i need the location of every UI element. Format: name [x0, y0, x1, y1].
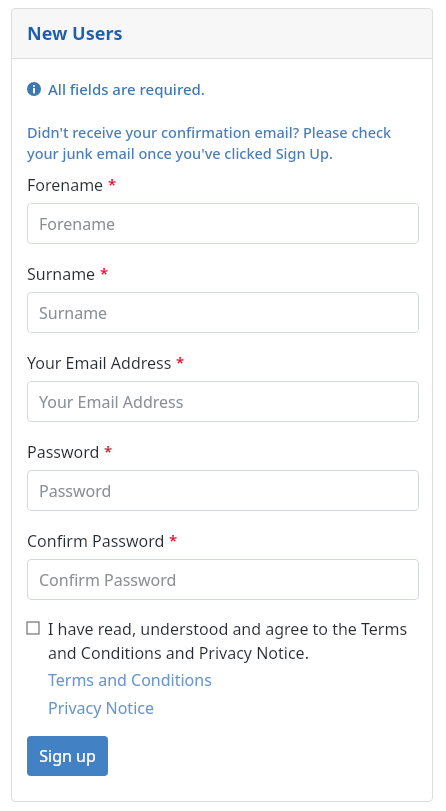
staticText: Password [39, 480, 112, 502]
staticText: * [176, 352, 185, 372]
staticText: New Users [27, 21, 123, 46]
button[interactable]: Agree to terms checkbox [27, 618, 419, 664]
staticText: Confirm Password [39, 569, 177, 591]
staticText: * [104, 441, 113, 461]
staticText: Didn't receive your confirmation email? … [27, 122, 419, 164]
button[interactable]: Your Email Address [27, 381, 419, 422]
staticText: All fields are required. [48, 79, 205, 99]
staticText: Your Email Address [39, 391, 184, 413]
staticText: Terms and Conditions [48, 669, 212, 691]
button[interactable]: Surname [27, 292, 419, 333]
staticText: I have read, understood and agree to the… [48, 618, 419, 664]
staticText: Forename [39, 213, 116, 235]
button[interactable]: Terms and Conditions [48, 669, 212, 691]
staticText: * [169, 530, 178, 550]
staticText: * [100, 263, 109, 283]
button[interactable]: Confirm Password [27, 559, 419, 600]
button[interactable]: Sign up [27, 736, 108, 776]
staticText: Confirm Password [27, 530, 165, 552]
staticText: Surname [27, 263, 96, 285]
other: Agree to terms checkbox [27, 622, 39, 634]
staticText: Privacy Notice [48, 697, 154, 719]
staticText: Surname [39, 302, 108, 324]
staticText: Password [27, 441, 100, 463]
staticText: Sign up [39, 745, 96, 767]
button[interactable]: Password [27, 470, 419, 511]
staticText: * [108, 174, 117, 194]
button[interactable]: Privacy Notice [48, 697, 154, 719]
staticText: Your Email Address [27, 352, 172, 374]
staticText: Forename [27, 174, 104, 196]
other: Information [27, 82, 41, 96]
button[interactable]: Forename [27, 203, 419, 244]
